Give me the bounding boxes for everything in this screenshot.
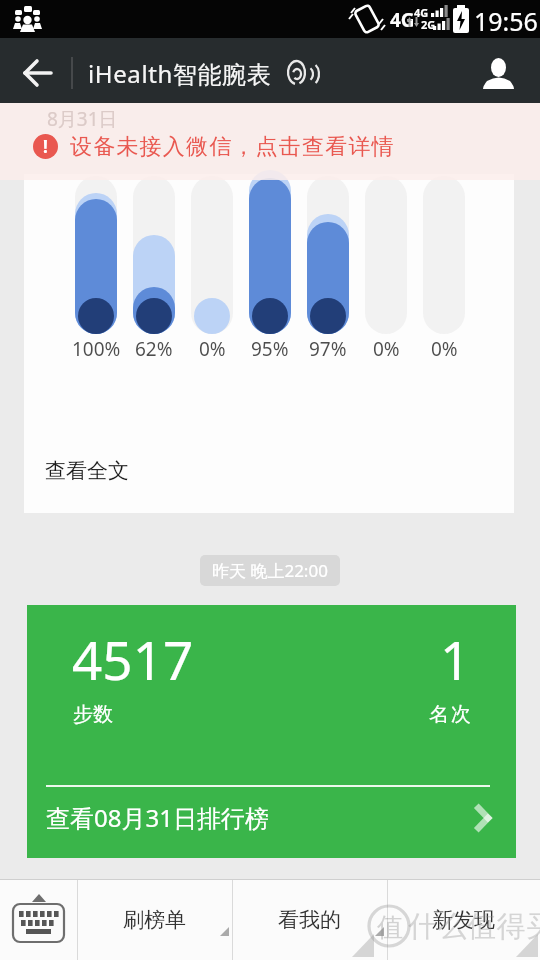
staticText: 设备未接入微信，点击查看详情 — [70, 133, 395, 161]
staticText: 刷榜单 — [123, 907, 186, 933]
staticText: iHealth智能腕表 — [88, 57, 272, 90]
button[interactable]: ! — [0, 103, 540, 180]
staticText: 什么值得买 — [408, 908, 540, 945]
staticText: 名次 — [428, 702, 472, 727]
staticText: 4G — [390, 7, 415, 33]
staticText: 8月31日 — [47, 106, 118, 132]
button[interactable] — [0, 880, 77, 960]
staticText: 4G — [414, 5, 429, 20]
staticText: 100% — [72, 336, 121, 362]
button[interactable]: 看我的 — [232, 880, 387, 960]
staticText: 62% — [135, 336, 173, 362]
staticText: 97% — [309, 336, 347, 362]
staticText: 0% — [199, 336, 226, 362]
button[interactable]: 新发现 — [387, 880, 540, 960]
staticText: 0% — [373, 336, 400, 362]
staticText: 95% — [251, 336, 289, 362]
staticText: ! — [43, 135, 48, 158]
staticText: 4517 — [72, 623, 194, 695]
staticText: 1 — [440, 623, 471, 695]
staticText: 19:56 — [474, 4, 538, 38]
staticText: 看我的 — [278, 907, 341, 933]
button[interactable] — [480, 55, 518, 93]
staticText: 步数 — [73, 702, 113, 727]
staticText: 昨天 晚上22:00 — [212, 559, 328, 582]
staticText: 查看08月31日排行榜 — [46, 801, 269, 834]
staticText: 2G — [421, 17, 436, 32]
button[interactable]: 刷榜单 — [77, 880, 232, 960]
staticText: 值 — [377, 911, 403, 944]
staticText: 0% — [431, 336, 458, 362]
button[interactable]: 4517 — [27, 605, 516, 858]
staticText: 查看全文 — [45, 458, 129, 484]
staticText: 新发现 — [432, 907, 495, 933]
button[interactable] — [20, 56, 54, 90]
